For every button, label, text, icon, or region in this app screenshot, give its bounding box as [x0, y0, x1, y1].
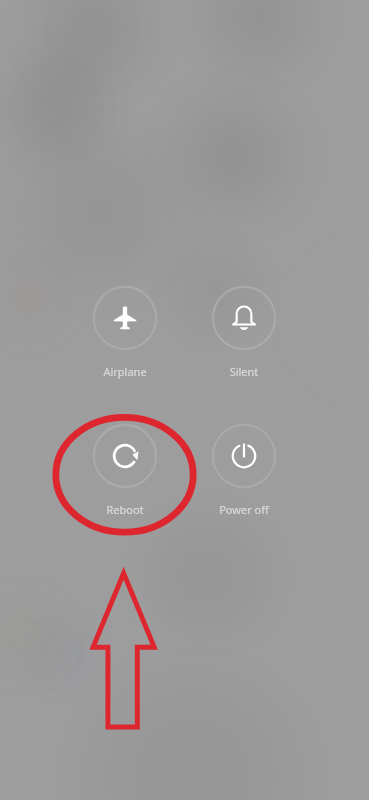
staticText: Reboot — [83, 502, 167, 517]
button[interactable]: Power off — [202, 424, 286, 517]
button[interactable]: Reboot — [83, 424, 167, 517]
button[interactable]: Silent — [202, 286, 286, 379]
staticText: Silent — [202, 364, 286, 379]
button[interactable]: Airplane — [83, 286, 167, 379]
staticText: Power off — [202, 502, 286, 517]
staticText: Airplane — [83, 364, 167, 379]
